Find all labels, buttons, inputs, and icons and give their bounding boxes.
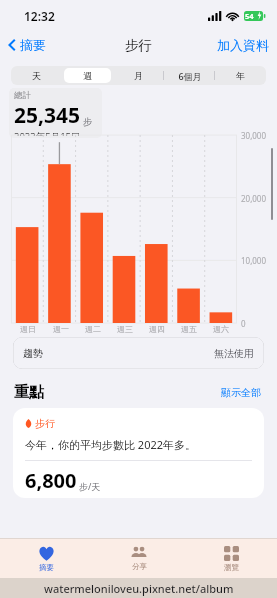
- staticText: 重點: [14, 383, 44, 402]
- staticText: 0: [241, 318, 246, 329]
- staticText: 分享: [132, 562, 147, 571]
- staticText: 6,800: [25, 467, 77, 494]
- staticText: 摘要: [39, 563, 54, 572]
- staticText: 25,345: [14, 101, 81, 130]
- staticText: 週二: [85, 324, 101, 334]
- button[interactable]: 摘要: [0, 539, 93, 578]
- staticText: 加入資料: [217, 37, 269, 53]
- staticText: 天: [32, 70, 41, 81]
- staticText: 趨勢: [23, 347, 43, 360]
- staticText: 10,000: [241, 255, 267, 266]
- staticText: 週一: [53, 324, 69, 334]
- button[interactable]: 天: [13, 68, 60, 83]
- button[interactable]: 加入資料: [209, 33, 277, 57]
- staticText: 12:32: [24, 8, 55, 24]
- staticText: 總計: [14, 90, 31, 101]
- staticText: 54: [245, 11, 254, 21]
- staticText: 20,000: [241, 193, 267, 204]
- staticText: 週六: [213, 324, 229, 334]
- staticText: 摘要: [20, 37, 46, 53]
- button[interactable]: 瀏覽: [185, 539, 277, 578]
- staticText: 無法使用: [214, 347, 254, 360]
- staticText: 6個月: [178, 70, 202, 82]
- staticText: 週三: [117, 324, 133, 334]
- staticText: 步/天: [79, 480, 101, 492]
- staticText: 瀏覽: [224, 563, 239, 572]
- staticText: 步行: [35, 417, 55, 430]
- staticText: 步: [83, 116, 93, 128]
- staticText: 顯示全部: [221, 386, 261, 399]
- button[interactable]: 趨勢: [13, 337, 264, 369]
- staticText: 週日: [20, 324, 36, 334]
- staticText: 週: [83, 70, 92, 81]
- staticText: 週五: [181, 324, 197, 334]
- button[interactable]: 6個月: [166, 68, 213, 83]
- button[interactable]: 年: [217, 68, 264, 83]
- staticText: 2023年5月15日: [14, 130, 81, 136]
- staticText: 月: [134, 70, 143, 81]
- button[interactable]: 摘要: [0, 34, 54, 56]
- button[interactable]: 顯示全部: [219, 384, 263, 401]
- staticText: 今年，你的平均步數比 2022年多。: [25, 437, 197, 452]
- button[interactable]: 步行: [13, 408, 264, 498]
- staticText: 步行: [125, 37, 152, 54]
- staticText: 年: [236, 70, 245, 81]
- staticText: 30,000: [241, 130, 267, 141]
- button[interactable]: 週: [64, 68, 111, 83]
- staticText: 週四: [149, 324, 165, 334]
- button[interactable]: 月: [115, 68, 162, 83]
- button[interactable]: 分享: [93, 539, 185, 578]
- staticText: watermeloniloveu.pixnet.net/album: [44, 581, 234, 596]
